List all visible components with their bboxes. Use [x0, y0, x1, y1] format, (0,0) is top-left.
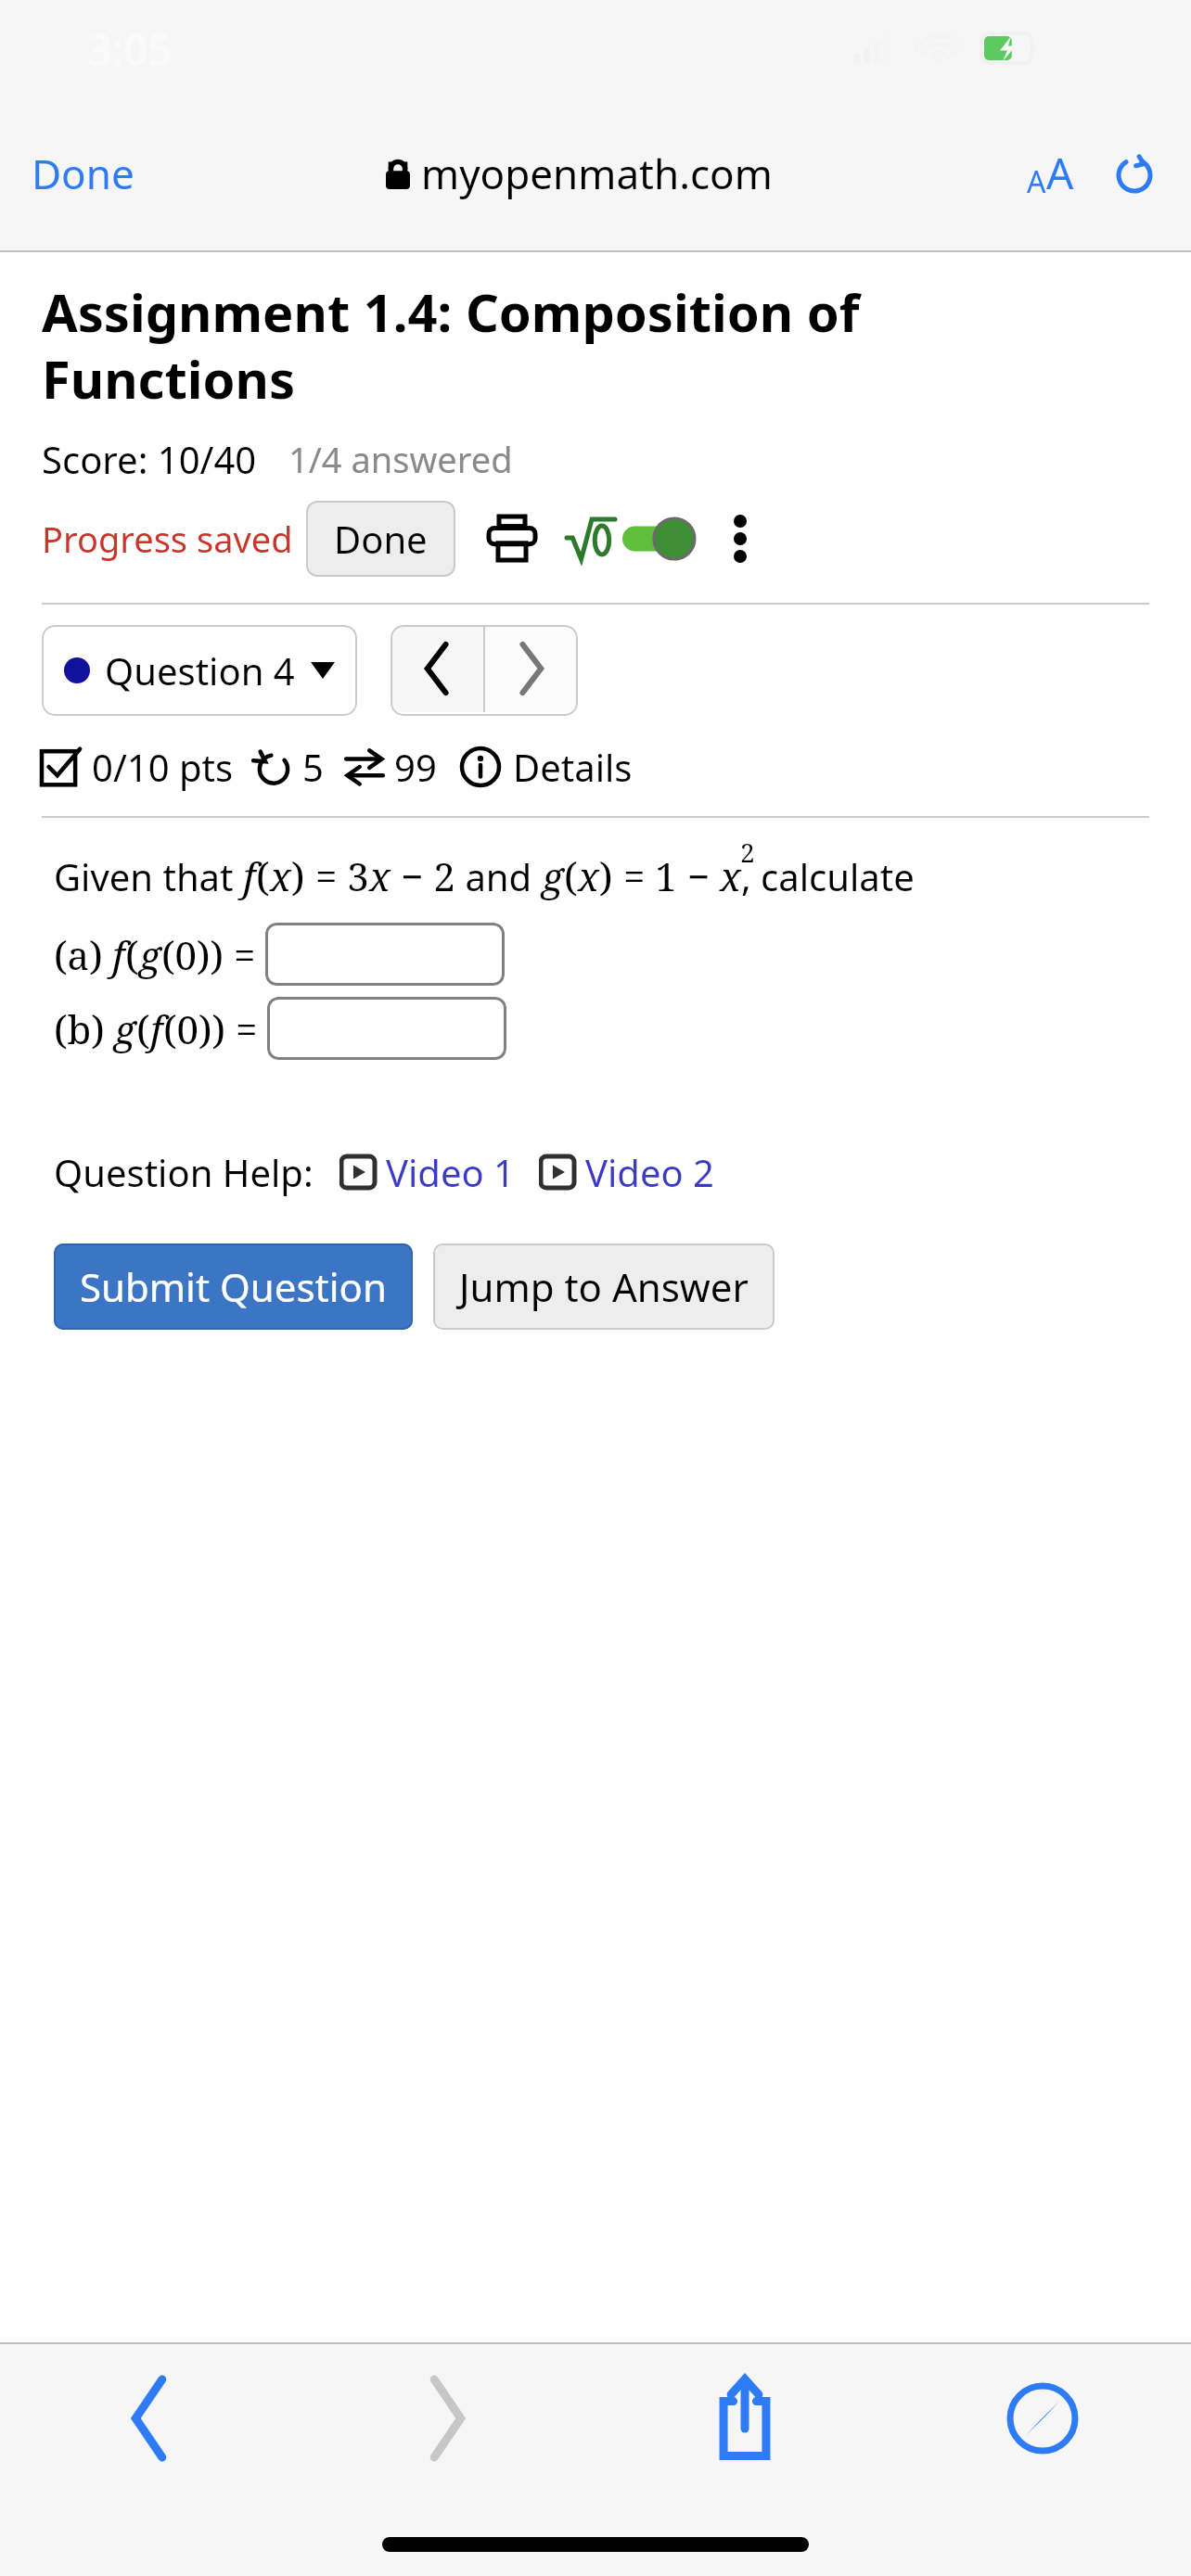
button[interactable]: Share — [595, 2344, 893, 2493]
staticText: Video 2 — [585, 1147, 714, 1197]
staticText: 1/4 answered — [288, 435, 513, 483]
staticText: Given that — [54, 851, 243, 901]
button[interactable]: Answer input (a) — [265, 923, 505, 986]
button[interactable]: Previous question — [391, 625, 483, 712]
staticText: = — [234, 928, 256, 981]
staticText: ) — [291, 849, 305, 902]
staticText: x — [270, 849, 291, 902]
staticText: A — [1046, 144, 1074, 202]
button[interactable]: Text size options — [1016, 134, 1085, 211]
staticText: Score: 10/40 — [42, 434, 257, 484]
staticText: = — [236, 1002, 258, 1055]
staticText: Done — [334, 514, 428, 564]
staticText: f — [243, 849, 256, 902]
staticText: Assignment 1.4: Composition of Functions — [42, 276, 1061, 414]
button[interactable]: myopenmath.com — [380, 138, 778, 209]
staticText: Submit Question — [80, 1260, 387, 1313]
button[interactable]: Submit Question — [54, 1243, 413, 1330]
button[interactable]: Answer input (b) — [267, 997, 506, 1060]
staticText: = 3 — [305, 849, 369, 902]
button[interactable]: Math input toggle — [563, 512, 698, 566]
button[interactable]: Reload page — [1106, 145, 1163, 202]
staticText: ) — [599, 849, 613, 902]
button[interactable]: Print — [483, 511, 541, 567]
staticText: 0/10 pts — [92, 742, 234, 792]
staticText: Jump to Answer — [459, 1260, 749, 1313]
button[interactable]: Details — [455, 738, 636, 796]
staticText: ( — [564, 849, 578, 902]
staticText: ( — [125, 928, 139, 981]
staticText: myopenmath.com — [421, 146, 773, 201]
staticText: (a) — [54, 928, 103, 981]
staticText: g — [139, 928, 161, 981]
staticText: x — [369, 849, 391, 902]
staticText: ( — [136, 1002, 150, 1055]
staticText: 99 — [394, 742, 437, 792]
button[interactable]: Jump to Answer — [433, 1243, 775, 1330]
button[interactable]: Open in Safari — [893, 2344, 1191, 2493]
staticText: (0)) — [163, 1002, 226, 1055]
staticText: 2 — [740, 835, 755, 870]
staticText: f — [150, 1002, 163, 1055]
button[interactable]: Next question — [485, 625, 578, 712]
staticText: f — [112, 928, 125, 981]
button[interactable]: Question 4 — [42, 625, 357, 716]
staticText: A — [1027, 161, 1046, 202]
staticText: ( — [256, 849, 270, 902]
staticText: (b) — [54, 1002, 105, 1055]
staticText: Details — [513, 742, 633, 792]
staticText: x — [578, 849, 599, 902]
staticText: = 1 − — [613, 849, 720, 902]
staticText: (0)) — [161, 928, 224, 981]
button[interactable]: Done — [22, 136, 144, 210]
button[interactable]: Forward — [298, 2344, 595, 2493]
staticText: g — [114, 1002, 136, 1055]
staticText: Question Help: — [54, 1147, 314, 1197]
button[interactable]: Back — [0, 2344, 298, 2493]
button[interactable]: Video 1 — [339, 1143, 517, 1201]
button[interactable]: Video 2 — [539, 1143, 716, 1201]
staticText: Video 1 — [386, 1147, 515, 1197]
staticText: Done — [32, 146, 134, 201]
staticText: 5 — [302, 742, 324, 792]
button[interactable]: Done — [306, 501, 455, 577]
staticText: , calculate — [741, 851, 915, 901]
staticText: − 2 — [391, 849, 455, 902]
staticText: Question 4 — [105, 645, 295, 695]
staticText: Progress saved — [42, 515, 293, 563]
button[interactable]: More options — [723, 509, 758, 568]
staticText: x — [720, 849, 741, 902]
staticText: g — [542, 849, 564, 902]
staticText: and — [455, 851, 542, 901]
